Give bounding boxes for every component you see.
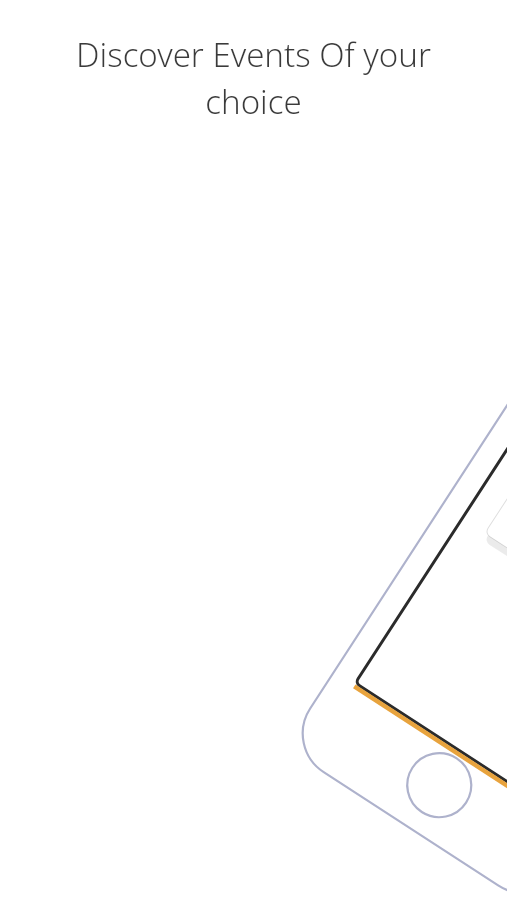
staticText: Discover Events Of your choice (28, 32, 479, 124)
button[interactable]: Events illustration (0, 0, 507, 900)
